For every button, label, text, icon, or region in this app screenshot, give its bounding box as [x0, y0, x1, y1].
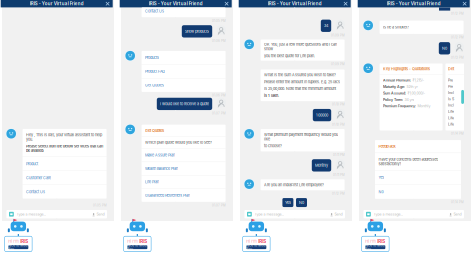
staticText: Monthly [315, 163, 328, 168]
button[interactable]: Monthly [312, 159, 331, 171]
button[interactable]: Contact Us [142, 5, 226, 17]
staticText: Incl [448, 91, 454, 95]
staticText: Key Highlights - Quotations [383, 66, 430, 71]
staticText: Yes [378, 175, 384, 180]
button[interactable]: Guaranteed Retirement Plan [142, 189, 226, 202]
staticText: Product [26, 161, 38, 166]
button[interactable]: Send [330, 212, 342, 216]
staticText: to choose? [264, 144, 282, 148]
button[interactable]: Close chat [343, 1, 348, 7]
staticText: 01:05 PM [93, 204, 107, 207]
staticText: 52th yr [406, 84, 417, 89]
staticText: 01:06 PM [212, 39, 226, 43]
button[interactable]: No [296, 198, 307, 207]
staticText: Incl [448, 103, 454, 107]
staticText: 01:11 PM [333, 153, 345, 156]
staticText: 01:14 PM [451, 200, 464, 204]
staticText: 01:07 PM [212, 204, 226, 207]
staticText: IRIS [139, 239, 147, 244]
staticText: Hi I'm [365, 239, 376, 244]
button[interactable]: Product [23, 157, 107, 171]
button[interactable]: 100000 [313, 109, 331, 121]
staticText: Nice to Meet You [246, 244, 266, 251]
staticText: 01:12 PM [451, 35, 464, 39]
button[interactable]: Add attachment [366, 212, 371, 217]
staticText: IRIS - Your Virtual Friend [268, 1, 322, 6]
staticText: Nice to Meet You [365, 244, 385, 251]
staticText: 01:11 PM [333, 173, 345, 177]
staticText: Are you an IndiaFirst Life employee? [264, 182, 324, 187]
staticText: Type a message... [16, 212, 46, 216]
staticText: is 25,00,000. Note that the minimum amou… [264, 86, 336, 91]
staticText: Life [448, 109, 454, 114]
staticText: 01:09 PM [331, 62, 345, 66]
button[interactable]: Life Plan [142, 175, 226, 188]
button[interactable]: Chat with IRIS [243, 221, 270, 252]
staticText: OK You, just a few more questions and I … [264, 42, 337, 51]
button[interactable]: Chat with IRIS [124, 221, 151, 252]
button[interactable]: Close chat [462, 1, 467, 7]
staticText: IRIS [377, 239, 385, 244]
staticText: Pre [448, 84, 453, 88]
staticText: Policy Term: [383, 97, 403, 102]
staticText: Product FAQ [145, 69, 165, 74]
staticText: Det [448, 66, 454, 71]
staticText: Feedback [378, 144, 395, 149]
staticText: Annual Premium: [383, 78, 411, 82]
button[interactable]: Chat with IRIS [5, 221, 32, 252]
staticText: What premium payment frequency would you… [264, 132, 338, 141]
staticText: Get Quotes [145, 83, 164, 87]
staticText: Have your concerns been addressed satisf… [378, 157, 438, 166]
button[interactable]: Send [92, 212, 104, 216]
staticText: 01:09 PM [331, 33, 345, 37]
staticText: I would like to receive a quote [160, 102, 209, 106]
button[interactable]: Wealth Balance Plan [142, 162, 226, 175]
staticText: Type a message... [254, 212, 284, 216]
button[interactable]: Product FAQ [142, 65, 226, 78]
staticText: Send [334, 212, 342, 216]
button[interactable]: Contact Us [23, 185, 107, 199]
staticText: Which plan quote would you like to see? [145, 140, 212, 145]
staticText: ₹1,215/- [412, 78, 424, 82]
button[interactable]: Get Quotes [142, 78, 226, 92]
staticText: Nice to Meet You [8, 244, 28, 251]
staticText: Contact Us [26, 189, 45, 194]
staticText: IRIS [20, 239, 28, 244]
staticText: No [378, 190, 383, 194]
staticText: Send [96, 212, 104, 216]
staticText: Please select from the below services th… [26, 144, 103, 153]
button[interactable]: Close chat [224, 1, 229, 7]
button[interactable]: Products [142, 51, 226, 64]
button[interactable]: Close chat [105, 1, 110, 7]
staticText: Life [448, 116, 454, 120]
button[interactable]: Show products [182, 25, 212, 37]
staticText: IRIS - Your Virtual Friend [387, 1, 441, 6]
staticText: IRIS - Your Virtual Friend [149, 1, 203, 6]
staticText: Is he a smoker? [383, 25, 409, 29]
button[interactable]: 34 [321, 20, 331, 32]
button[interactable]: Yes [282, 198, 293, 207]
button[interactable]: No [439, 42, 450, 54]
staticText: Hi I'm [246, 239, 257, 244]
button[interactable]: Customer Care [23, 171, 107, 185]
button[interactable]: Chat with IRIS [362, 221, 389, 252]
button[interactable]: Yes [375, 170, 461, 184]
staticText: 01:10 PM [332, 103, 345, 106]
button[interactable]: Add attachment [9, 212, 14, 217]
staticText: 01:14 PM [451, 132, 464, 135]
staticText: Hey , This is IRIS, your virtual assista… [26, 132, 102, 141]
staticText: 34 [324, 23, 328, 28]
staticText: you the best quote for Life plan. [264, 54, 315, 58]
staticText: Premium Frequency: [383, 104, 416, 108]
staticText: Yes [285, 200, 291, 205]
button[interactable]: Add attachment [247, 212, 252, 217]
staticText: 100000 [316, 113, 328, 117]
button[interactable]: Send [449, 212, 461, 216]
button[interactable]: No [375, 185, 461, 199]
staticText: Please enter the amount in rupees. E.g. … [264, 80, 340, 84]
staticText: Get Quotes [145, 128, 164, 133]
staticText: Make Assure Plan [145, 153, 175, 157]
button[interactable]: I would like to receive a quote [157, 98, 212, 110]
button[interactable]: Make Assure Plan [142, 149, 226, 162]
staticText: What is the Sum Assured you wish to take… [264, 73, 336, 77]
